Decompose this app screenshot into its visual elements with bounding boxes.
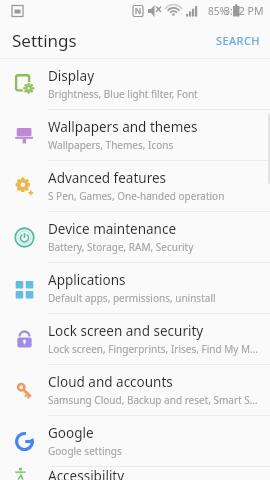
staticText: Accessibility (48, 467, 125, 480)
other: Wallpapers and themes (0, 125, 48, 146)
staticText: Samsung Cloud, Backup and reset, Smart S… (48, 393, 260, 407)
staticText: Settings (12, 29, 77, 52)
staticText: Advanced features (48, 169, 167, 187)
staticText: Wallpapers, Themes, Icons (48, 138, 174, 152)
staticText: Wallpapers and themes (48, 118, 198, 136)
staticText: Lock screen, Fingerprints, Irises, Find … (48, 342, 260, 356)
button[interactable]: SEARCH (206, 27, 270, 54)
staticText: Brightness, Blue light filter, Font (48, 87, 198, 101)
other: Display (0, 74, 48, 95)
button[interactable]: Lock screen and security (0, 314, 270, 364)
staticText: Lock screen and security (48, 322, 204, 340)
other: Advanced features (0, 176, 48, 197)
button[interactable]: Advanced features (0, 161, 270, 211)
other: Applications (0, 278, 48, 299)
button[interactable]: Display (0, 59, 270, 109)
staticText: Cloud and accounts (48, 373, 173, 391)
other: Lock screen and security (0, 329, 48, 350)
other: Cloud and accounts (0, 380, 48, 401)
staticText: Default apps, permissions, uninstall (48, 291, 216, 305)
staticText: Battery, Storage, RAM, Security (48, 240, 194, 254)
staticText: SEARCH (216, 33, 260, 48)
button[interactable]: Cloud and accounts (0, 365, 270, 415)
other: Device maintenance (0, 227, 48, 248)
staticText: Google (48, 424, 94, 442)
other: Accessibility (0, 467, 48, 480)
button[interactable]: Applications (0, 263, 270, 313)
button[interactable]: Google (0, 416, 270, 466)
staticText: 85% (208, 4, 228, 18)
staticText: Google settings (48, 444, 122, 458)
button[interactable]: Device maintenance (0, 212, 270, 262)
staticText: Device maintenance (48, 220, 177, 238)
staticText: Display (48, 67, 95, 85)
staticText: S Pen, Games, One-handed operation (48, 189, 225, 203)
staticText: Applications (48, 271, 126, 289)
button[interactable]: Accessibility (0, 467, 270, 480)
other: Google (0, 431, 48, 452)
staticText: 3:42 PM (224, 4, 264, 18)
button[interactable]: Wallpapers and themes (0, 110, 270, 160)
